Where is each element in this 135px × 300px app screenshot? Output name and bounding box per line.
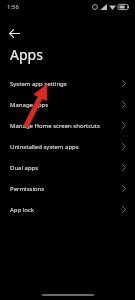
button[interactable]: Manage apps (0, 94, 135, 115)
button[interactable]: Permissions (0, 178, 135, 199)
button[interactable]: App lock (0, 199, 135, 220)
button[interactable]: Uninstalled system apps (0, 136, 135, 157)
button[interactable]: System app settings (0, 73, 135, 94)
button[interactable]: Back (4, 23, 24, 43)
staticText: Permissions (10, 185, 122, 193)
staticText: Apps (10, 45, 43, 64)
staticText: Uninstalled system apps (10, 143, 122, 151)
button[interactable]: Manage Home screen shortcuts (0, 115, 135, 136)
staticText: App lock (10, 206, 122, 214)
staticText: Manage apps (10, 101, 122, 109)
staticText: 1:56 (7, 3, 19, 11)
staticText: System app settings (10, 80, 122, 88)
staticText: Manage Home screen shortcuts (10, 122, 122, 130)
staticText: Dual apps (10, 164, 122, 172)
button[interactable]: Dual apps (0, 157, 135, 178)
